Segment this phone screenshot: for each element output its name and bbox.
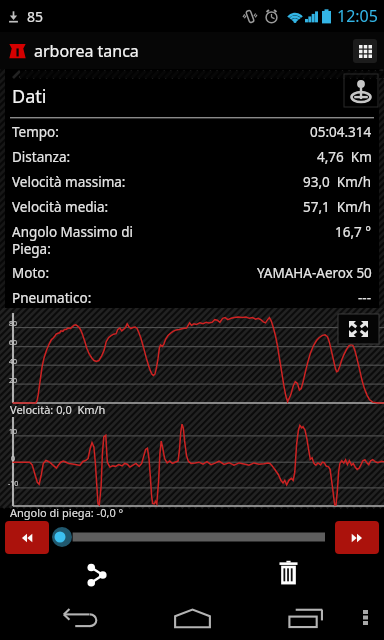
staticText: YAMAHA-Aerox 50	[257, 264, 372, 282]
button[interactable]: Velocità media:	[12, 194, 372, 219]
button[interactable]: Angolo Massimo di Piega:	[12, 219, 372, 260]
button[interactable]: Apps grid	[353, 39, 377, 63]
button[interactable]: More options	[350, 602, 380, 634]
staticText: Velocità media:	[12, 198, 303, 216]
button[interactable]: Velocità massima:	[12, 169, 372, 194]
staticText: ---	[358, 289, 372, 307]
staticText: 40	[9, 357, 18, 367]
staticText: 16,7 °	[335, 223, 372, 241]
button[interactable]: Fullscreen	[338, 314, 379, 344]
button[interactable]: Moto:	[12, 260, 372, 285]
button[interactable]: Rewind	[5, 521, 49, 554]
staticText: Velocità massima:	[12, 173, 303, 191]
staticText: 4,76 Km	[317, 148, 372, 166]
staticText: 60	[9, 338, 18, 348]
button[interactable]: Back	[60, 602, 100, 634]
staticText: Angolo Massimo di Piega:	[12, 223, 335, 258]
staticText: 85	[27, 7, 44, 26]
staticText: -10	[8, 479, 19, 489]
staticText: 80	[9, 319, 18, 329]
staticText: 05:04.314	[310, 123, 372, 141]
staticText: Pneumatico:	[12, 289, 358, 307]
staticText: Dati	[12, 84, 47, 109]
staticText: arborea tanca	[34, 40, 139, 62]
button[interactable]: Recent apps	[285, 602, 325, 634]
button[interactable]: Home	[172, 602, 212, 634]
button[interactable]: Share	[78, 557, 114, 593]
staticText: 57,1 Km/h	[303, 198, 372, 216]
button[interactable]: Seek position	[55, 523, 325, 551]
staticText: Tempo:	[12, 123, 310, 141]
staticText: 10	[9, 427, 18, 437]
staticText: Distanza:	[12, 148, 317, 166]
button[interactable]: Select vehicle	[344, 74, 378, 107]
staticText: 0	[11, 454, 16, 464]
staticText: 12:05	[337, 5, 378, 27]
button[interactable]: Fast forward	[335, 521, 379, 554]
button[interactable]: Distanza:	[12, 144, 372, 169]
staticText: Velocità: 0,0 Km/h	[10, 402, 106, 417]
staticText: 20	[9, 376, 18, 386]
staticText: Moto:	[12, 264, 257, 282]
button[interactable]: Pneumatico:	[12, 285, 372, 310]
button[interactable]: Delete	[270, 555, 306, 591]
staticText: 93,0 Km/h	[303, 173, 372, 191]
button[interactable]: Tempo:	[12, 119, 372, 144]
staticText: Angolo di piega: -0,0 °	[10, 505, 124, 520]
